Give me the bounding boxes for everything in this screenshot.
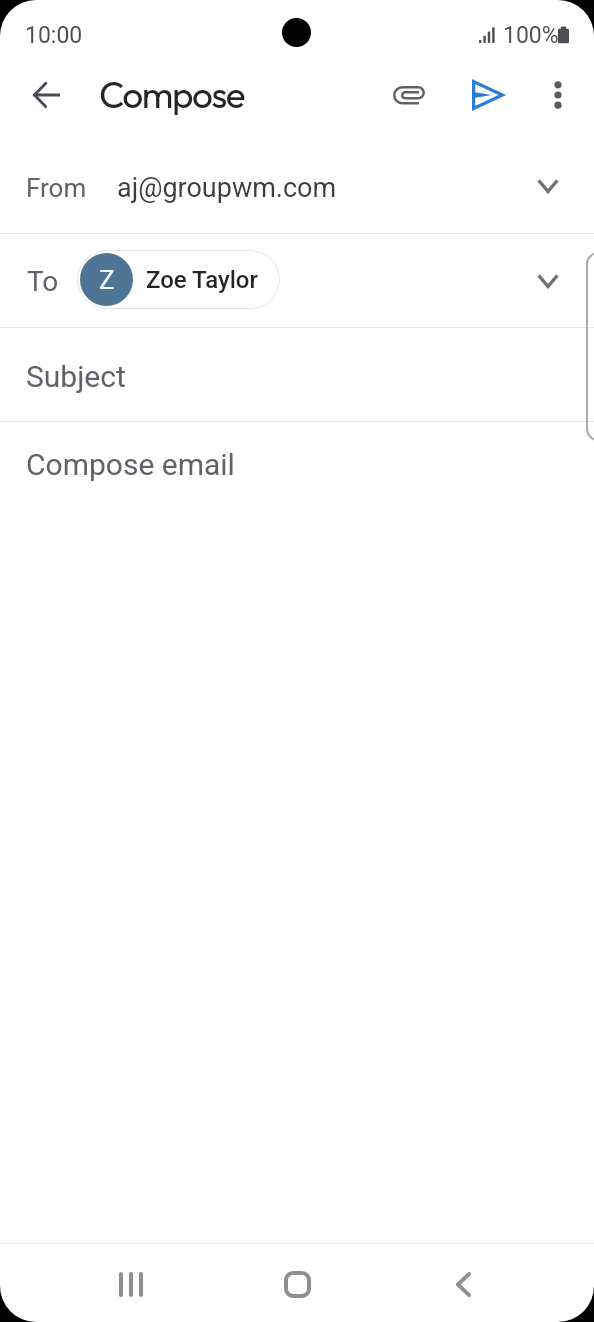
button[interactable]: Attach file: [376, 62, 443, 129]
staticText: To: [27, 265, 59, 298]
staticText: Compose: [99, 71, 245, 118]
button[interactable]: Back: [12, 61, 80, 129]
button[interactable]: Home: [257, 1244, 337, 1322]
button[interactable]: Recent apps: [91, 1244, 171, 1322]
staticText: Z: [99, 265, 115, 295]
staticText: Compose email: [26, 447, 235, 482]
button[interactable]: Send: [455, 62, 521, 128]
staticText: Subject: [26, 359, 126, 394]
staticText: 10:00: [25, 22, 83, 49]
button[interactable]: Compose email: [0, 422, 594, 1243]
button[interactable]: From: [0, 138, 594, 233]
staticText: 100%: [503, 22, 559, 49]
staticText: aj@groupwm.com: [117, 172, 337, 204]
button[interactable]: Subject: [0, 328, 594, 421]
button[interactable]: More options: [525, 62, 590, 127]
button[interactable]: Z: [77, 250, 280, 309]
button[interactable]: Back: [423, 1244, 503, 1322]
staticText: Zoe Taylor: [146, 266, 258, 294]
staticText: From: [26, 173, 87, 203]
button[interactable]: To: [0, 234, 594, 327]
